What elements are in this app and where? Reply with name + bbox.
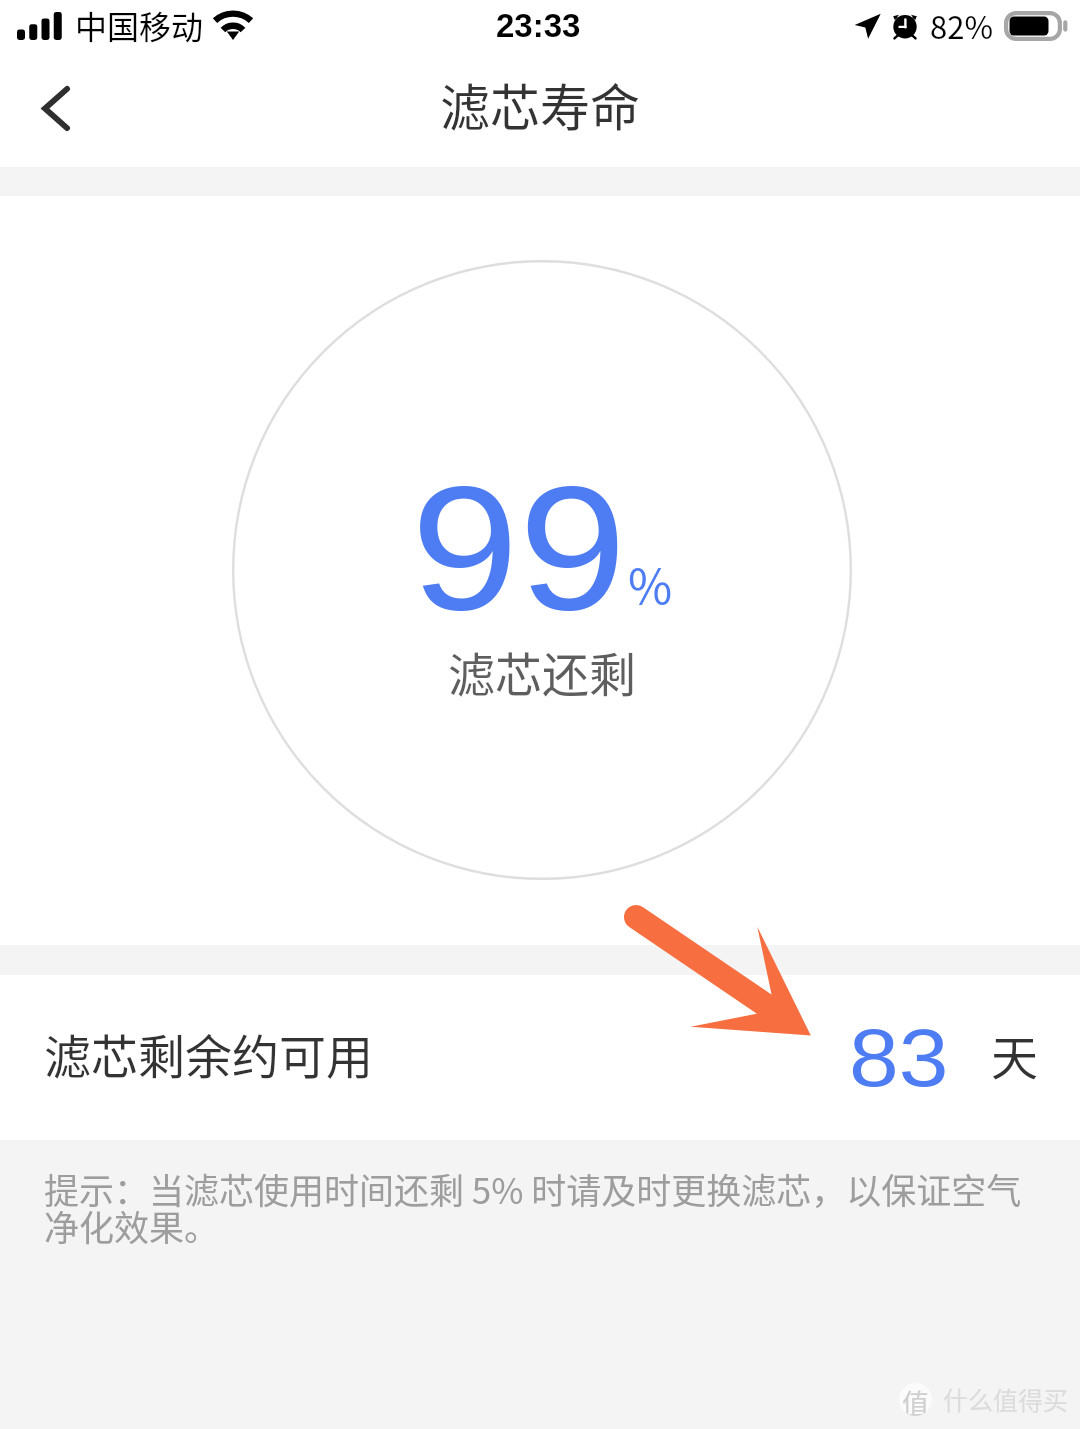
staticText: 滤芯寿命 — [440, 68, 640, 140]
staticText: % — [628, 548, 673, 618]
button[interactable]: Back — [0, 62, 100, 167]
staticText: 滤芯剩余约可用 — [44, 1019, 373, 1087]
staticText: 83 — [849, 1012, 949, 1104]
staticText: 中国移动 — [75, 2, 204, 48]
button[interactable]: 滤芯剩余约可用 — [0, 975, 1080, 1140]
staticText: 82% — [930, 3, 993, 48]
staticText: 天 — [991, 1020, 1038, 1088]
staticText: 值 — [902, 1383, 929, 1416]
staticText: 提示：当滤芯使用时间还剩 5% 时请及时更换滤芯，以保证空气净化效果。 — [44, 1163, 1024, 1251]
staticText: 99 — [411, 450, 627, 647]
staticText: 滤芯还剩 — [448, 637, 636, 705]
staticText: 什么值得买 — [943, 1381, 1069, 1417]
staticText: 23:33 — [496, 7, 581, 44]
